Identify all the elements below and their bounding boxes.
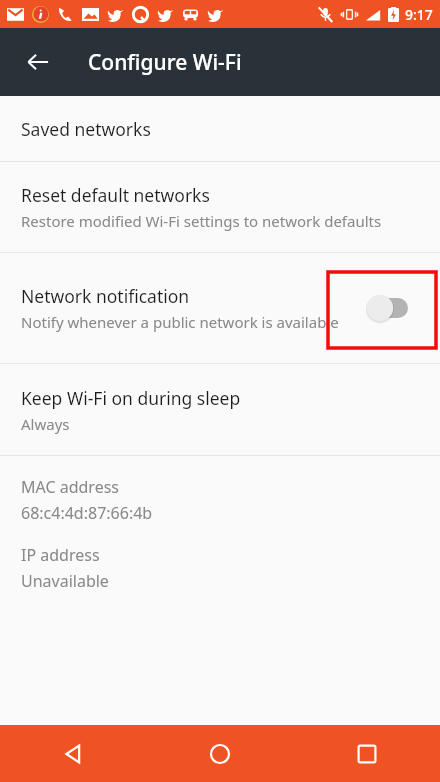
staticText: IP address — [21, 544, 100, 566]
staticText: Always — [21, 414, 70, 434]
button[interactable]: Network notification — [0, 253, 440, 363]
button[interactable]: Reset default networks — [0, 162, 440, 252]
button[interactable]: Recent apps — [293, 725, 440, 782]
staticText: Saved networks — [21, 117, 151, 141]
staticText: MAC address — [21, 476, 119, 498]
staticText: Reset default networks — [21, 183, 210, 207]
button[interactable]: Back — [14, 38, 62, 86]
button[interactable]: Back — [0, 725, 146, 782]
staticText: Restore modified Wi-Fi settings to netwo… — [21, 211, 382, 231]
staticText: Network notification — [21, 284, 190, 308]
staticText: Keep Wi-Fi on during sleep — [21, 386, 241, 410]
button[interactable]: Keep Wi-Fi on during sleep — [0, 364, 440, 455]
staticText: Unavailable — [21, 570, 109, 592]
button[interactable]: Home — [146, 725, 293, 782]
staticText: 68:c4:4d:87:66:4b — [21, 502, 153, 524]
staticText: Configure Wi-Fi — [88, 48, 242, 77]
button[interactable]: Saved networks — [0, 96, 440, 161]
staticText: 9:17 — [405, 5, 433, 24]
staticText: Notify whenever a public network is avai… — [21, 312, 339, 332]
button[interactable]: Network notification toggle — [358, 286, 418, 330]
